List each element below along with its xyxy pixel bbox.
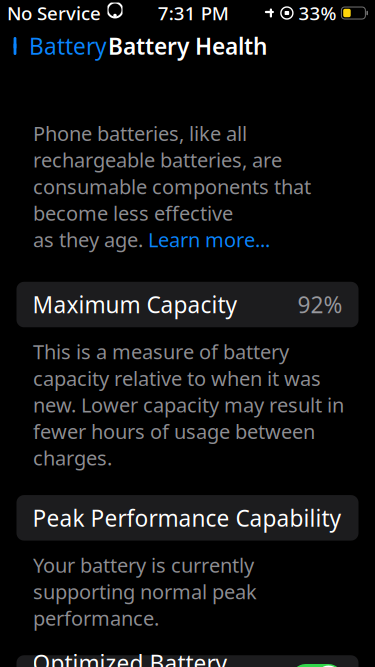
staticText: Maximum Capacity [32, 289, 237, 320]
staticText: 7:31 PM [158, 1, 229, 25]
staticText: Battery [29, 31, 107, 61]
staticText: as they age. [33, 226, 148, 253]
staticText: This is a measure of battery capacity re… [33, 338, 344, 471]
staticText: consumable components that become less e… [33, 173, 311, 226]
button[interactable]: Learn more... [148, 226, 270, 253]
staticText: 33% [298, 1, 336, 25]
staticText: Learn more... [148, 226, 270, 253]
staticText: No Service [7, 1, 101, 25]
staticText: Battery Health [108, 31, 267, 61]
staticText: Optimized Battery Charging [32, 648, 227, 667]
staticText: 92% [297, 289, 342, 320]
button[interactable]: Optimized Battery Charging [16, 655, 358, 667]
button[interactable]: Peak Performance Capability [16, 495, 358, 541]
staticText: Your battery is currently supporting nor… [33, 552, 257, 631]
staticText: Peak Performance Capability [32, 503, 341, 533]
button[interactable]: Maximum Capacity [16, 282, 358, 327]
button[interactable]: Battery [2, 24, 115, 68]
staticText: Phone batteries, like all rechargeable b… [33, 120, 282, 173]
